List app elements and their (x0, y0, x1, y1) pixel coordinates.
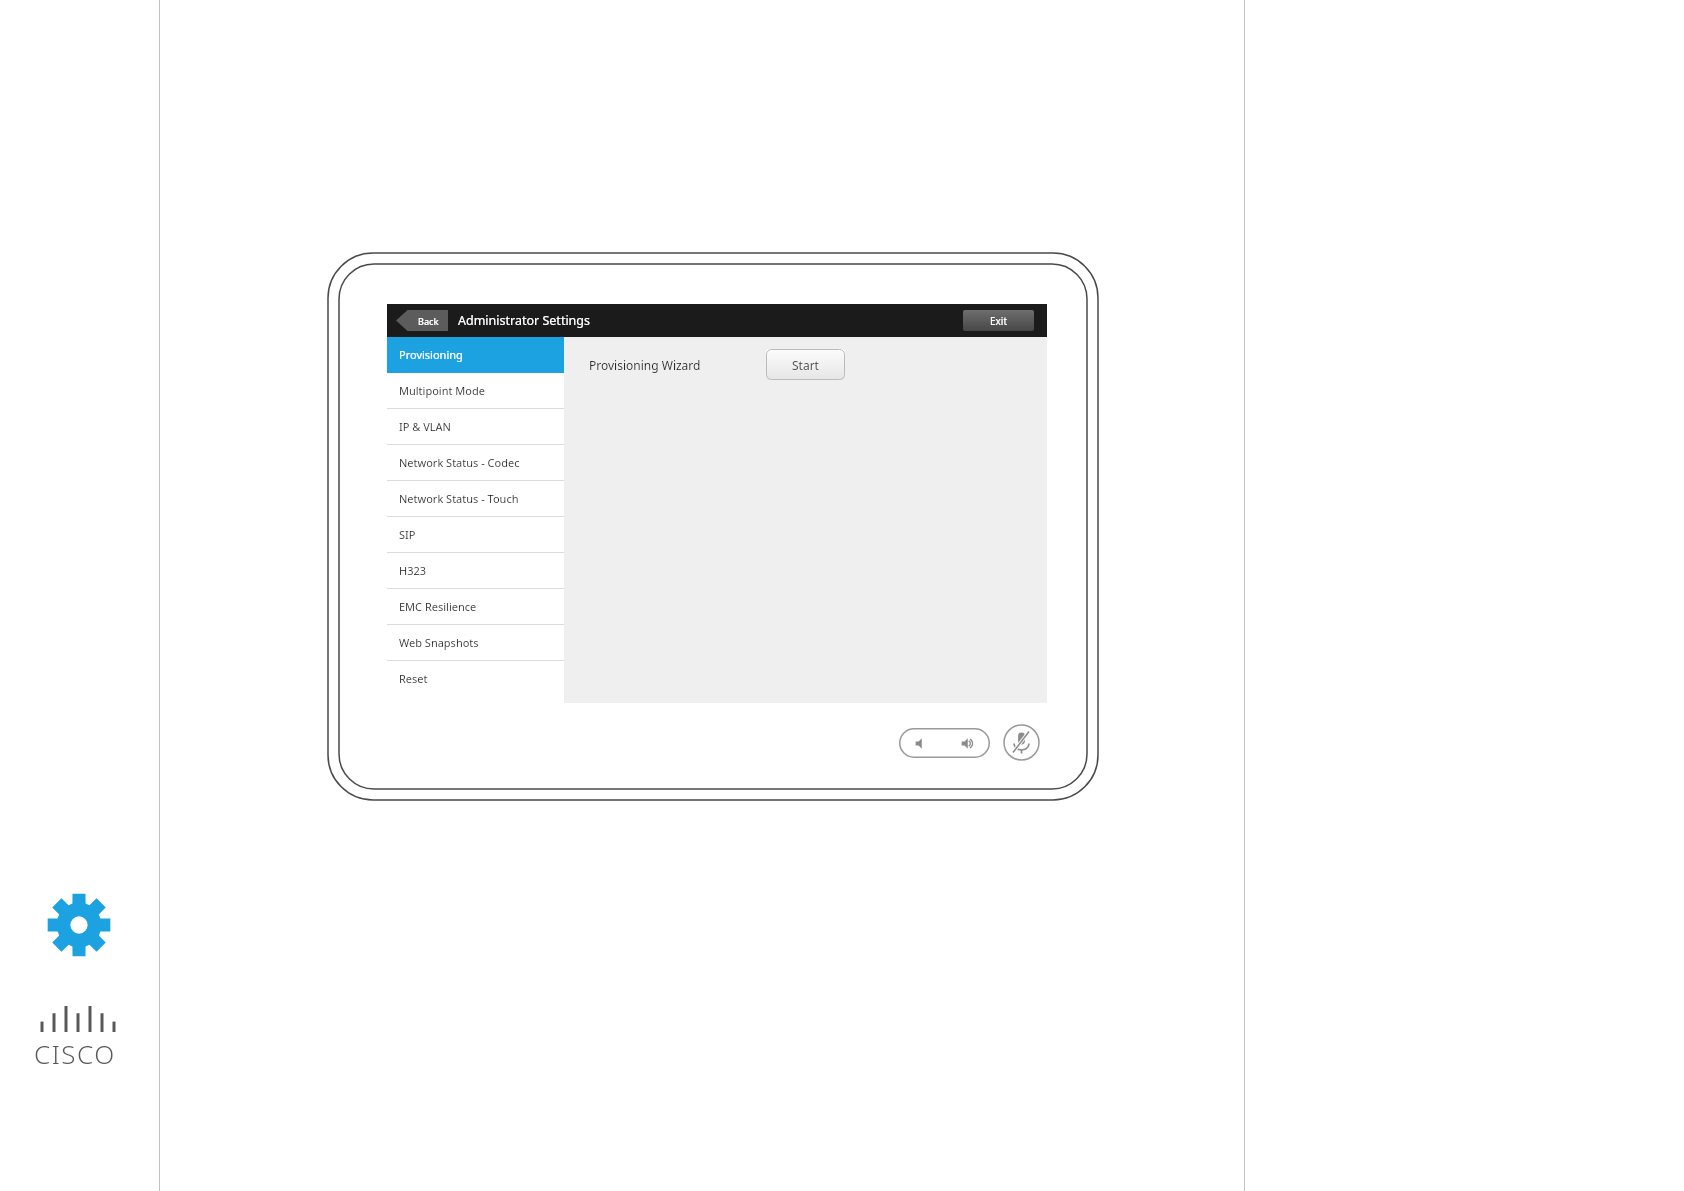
button[interactable]: Reset (387, 661, 564, 696)
staticText: Start (792, 357, 819, 373)
button[interactable]: EMC Resilience (387, 589, 564, 624)
staticText: Provisioning (399, 347, 463, 362)
button[interactable]: Web Snapshots (387, 625, 564, 660)
button[interactable]: Start (766, 349, 845, 380)
staticText: Multipoint Mode (399, 383, 485, 398)
button[interactable]: Network Status - Touch (387, 481, 564, 516)
staticText: H323 (399, 563, 427, 578)
staticText: IP & VLAN (399, 419, 451, 434)
button[interactable]: IP & VLAN (387, 409, 564, 444)
button[interactable]: Exit (963, 310, 1034, 331)
staticText: Reset (399, 671, 428, 686)
button[interactable]: Mute microphone (1003, 724, 1040, 761)
button[interactable]: Network Status - Codec (387, 445, 564, 480)
button[interactable]: Back (396, 310, 448, 331)
staticText: Provisioning Wizard (589, 357, 701, 373)
button[interactable]: H323 (387, 553, 564, 588)
button[interactable]: Multipoint Mode (387, 373, 564, 408)
staticText: Administrator Settings (458, 312, 591, 329)
staticText: CISCO (34, 1036, 116, 1071)
staticText: SIP (399, 527, 416, 542)
staticText: Back (418, 315, 439, 327)
button[interactable]: SIP (387, 517, 564, 552)
button[interactable]: Provisioning (387, 337, 564, 372)
staticText: Network Status - Codec (399, 455, 520, 470)
staticText: Network Status - Touch (399, 491, 519, 506)
staticText: Web Snapshots (399, 635, 479, 650)
button[interactable]: Volume down (899, 728, 944, 758)
staticText: EMC Resilience (399, 599, 477, 614)
button[interactable]: Volume up (945, 728, 990, 758)
staticText: Exit (990, 314, 1008, 328)
